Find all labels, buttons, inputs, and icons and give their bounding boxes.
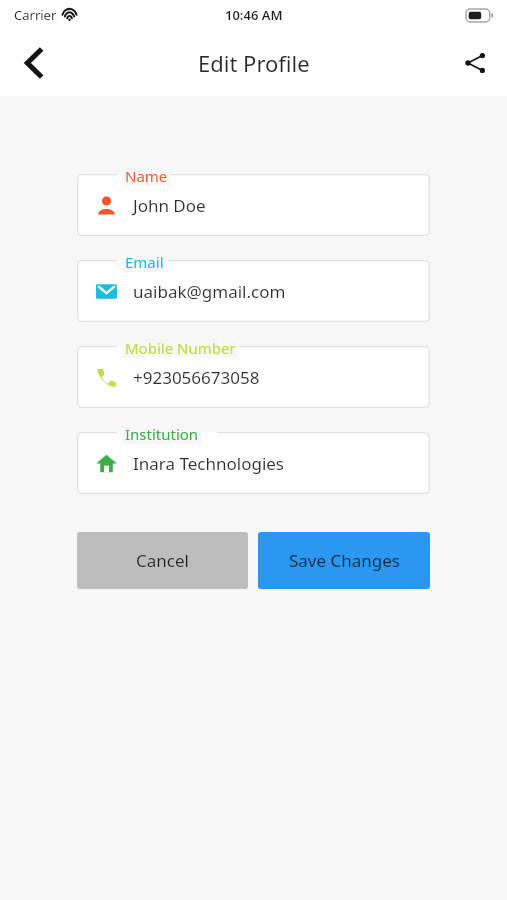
staticText: uaibak@gmail.com xyxy=(133,280,286,303)
button[interactable]: Institution xyxy=(77,424,430,494)
staticText: Name xyxy=(125,166,168,186)
button[interactable]: Save Changes xyxy=(258,532,430,589)
staticText: John Doe xyxy=(133,194,206,217)
staticText: Email xyxy=(125,252,164,272)
staticText: Cancel xyxy=(136,549,189,572)
staticText: Institution xyxy=(125,424,199,444)
button[interactable]: Share xyxy=(451,39,499,87)
staticText: Carrier xyxy=(14,6,57,24)
staticText: 10:46 AM xyxy=(225,6,283,24)
button[interactable]: Cancel xyxy=(77,532,248,589)
staticText: +923056673058 xyxy=(133,366,260,389)
staticText: Edit Profile xyxy=(198,48,310,78)
button[interactable]: Mobile Number xyxy=(77,338,430,408)
staticText: Save Changes xyxy=(289,549,400,572)
button[interactable]: Back xyxy=(8,37,60,89)
staticText: Inara Technologies xyxy=(133,452,284,475)
staticText: Mobile Number xyxy=(125,338,236,358)
button[interactable]: Name xyxy=(77,166,430,236)
button[interactable]: Email xyxy=(77,252,430,322)
